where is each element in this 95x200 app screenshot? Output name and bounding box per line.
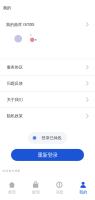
button[interactable]: 重新登录 bbox=[11, 149, 84, 161]
staticText: 关于我们 bbox=[7, 97, 23, 102]
staticText: 隐私政策 bbox=[7, 113, 23, 118]
button[interactable]: 服务协议 bbox=[0, 59, 95, 75]
staticText: 服务协议 bbox=[7, 65, 23, 70]
staticText: 发现 bbox=[32, 190, 40, 194]
staticText: 我的 bbox=[79, 190, 87, 194]
staticText: 登录已掉线 bbox=[41, 135, 61, 140]
staticText: 内容创作成果 bbox=[2, 169, 20, 172]
button[interactable]: 发现 bbox=[24, 178, 48, 198]
staticText: 首页 bbox=[8, 190, 16, 194]
staticText: 问题反馈 bbox=[7, 81, 23, 86]
button[interactable]: 我的曲库 (3/100) bbox=[0, 16, 95, 59]
button[interactable]: 我的 bbox=[71, 178, 95, 198]
button[interactable]: 隐私政策 bbox=[0, 108, 95, 124]
button[interactable]: 消息 bbox=[47, 178, 71, 198]
button[interactable]: 问题反馈 bbox=[0, 76, 95, 91]
staticText: 重新登录 bbox=[37, 152, 57, 158]
button[interactable]: 登录已掉线 bbox=[28, 132, 67, 144]
button[interactable]: 关于我们 bbox=[0, 92, 95, 107]
staticText: 消息 bbox=[55, 190, 63, 194]
staticText: 我的曲库 (3/100) bbox=[6, 22, 34, 27]
button[interactable]: 首页 bbox=[0, 178, 24, 198]
staticText: 我的 bbox=[3, 5, 11, 10]
